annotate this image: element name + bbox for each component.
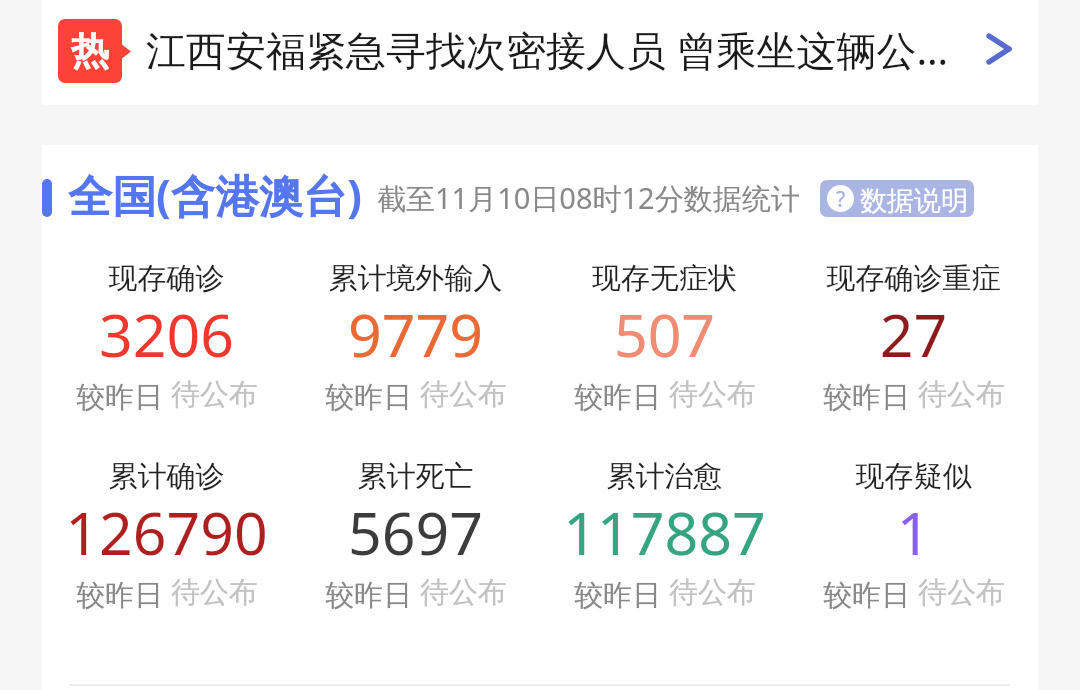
staticText: 待公布 [171, 574, 258, 611]
staticText: 待公布 [420, 574, 507, 611]
staticText: 待公布 [420, 376, 507, 413]
staticText: 较昨日 [76, 376, 171, 416]
staticText: ? [836, 185, 846, 212]
other: Open news [986, 30, 1012, 68]
staticText: 3206 [42, 294, 291, 374]
staticText: 126790 [42, 492, 291, 572]
staticText: 热 [71, 27, 109, 75]
staticText: 27 [789, 294, 1038, 374]
button[interactable]: 累计死亡 [291, 441, 540, 621]
staticText: 5697 [291, 492, 540, 572]
staticText: 较昨日 [325, 376, 420, 416]
staticText: 117887 [540, 492, 789, 572]
staticText: 累计境外输入 [291, 260, 540, 297]
button[interactable]: ? [820, 180, 974, 217]
staticText: 1 [789, 492, 1038, 572]
staticText: 待公布 [669, 376, 756, 413]
staticText: 较昨日 [325, 574, 420, 614]
button[interactable]: 热 [42, 0, 1038, 105]
staticText: 较昨日 [574, 574, 669, 614]
staticText: 累计死亡 [291, 458, 540, 495]
button[interactable]: 现存疑似 [789, 441, 1038, 621]
staticText: 现存确诊重症 [789, 260, 1038, 297]
button[interactable]: 现存确诊重症 [789, 243, 1038, 423]
staticText: 待公布 [918, 574, 1005, 611]
staticText: 507 [540, 294, 789, 374]
staticText: 现存确诊 [42, 260, 291, 297]
staticText: 江西安福紧急寻找次密接人员 曾乘坐这辆公… [146, 22, 949, 77]
staticText: 较昨日 [76, 574, 171, 614]
button[interactable]: 现存确诊 [42, 243, 291, 423]
staticText: 较昨日 [823, 574, 918, 614]
staticText: 累计确诊 [42, 458, 291, 495]
staticText: 待公布 [669, 574, 756, 611]
staticText: 待公布 [171, 376, 258, 413]
staticText: 全国(含港澳台) [68, 165, 362, 225]
staticText: 现存无症状 [540, 260, 789, 297]
button[interactable]: 累计境外输入 [291, 243, 540, 423]
button[interactable]: 累计确诊 [42, 441, 291, 621]
staticText: 较昨日 [574, 376, 669, 416]
staticText: 待公布 [918, 376, 1005, 413]
button[interactable]: 现存无症状 [540, 243, 789, 423]
button[interactable]: 累计治愈 [540, 441, 789, 621]
staticText: 累计治愈 [540, 458, 789, 495]
staticText: 现存疑似 [789, 458, 1038, 495]
staticText: 数据说明 [860, 184, 968, 217]
staticText: 截至11月10日08时12分数据统计 [377, 178, 800, 218]
staticText: 较昨日 [823, 376, 918, 416]
staticText: 9779 [291, 294, 540, 374]
